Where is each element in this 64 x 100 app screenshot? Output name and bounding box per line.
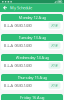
staticText: Detail	[50, 24, 58, 27]
button[interactable]: B-L-A 0630-1430	[1, 41, 63, 50]
staticText: B-L-A 0630-1430	[3, 43, 31, 48]
staticText: Wednesday 14 Aug	[15, 55, 48, 60]
button[interactable]: Wednesday 14 Aug	[1, 54, 63, 61]
button[interactable]: B-L-A 0630-1430	[1, 21, 63, 30]
button[interactable]: Back	[0, 3, 10, 12]
staticText: Monday 12 Aug	[18, 15, 45, 20]
button[interactable]: B-L-A 0630-1430	[1, 61, 63, 70]
staticText: Detail	[50, 64, 58, 67]
button[interactable]: Tuesday 13 Aug	[1, 34, 63, 41]
staticText: B-L-A 0630-1430	[3, 23, 31, 28]
staticText: B-L-A 0630-1430	[3, 63, 31, 68]
button[interactable]: B-L-A 0630-1430	[1, 81, 63, 90]
staticText: My Schedule	[10, 5, 32, 10]
staticText: Detail	[50, 84, 58, 87]
staticText: Detail	[50, 44, 58, 47]
staticText: B-L-A 0630-1430	[3, 83, 31, 88]
button[interactable]: Monday 12 Aug	[1, 14, 63, 21]
staticText: Tuesday 13 Aug	[18, 35, 45, 40]
staticText: Thursday 15 Aug	[17, 75, 46, 80]
button[interactable]: Friday 16 Aug	[1, 94, 63, 100]
button[interactable]: Thursday 15 Aug	[1, 74, 63, 81]
staticText: Friday 16 Aug	[20, 95, 44, 100]
